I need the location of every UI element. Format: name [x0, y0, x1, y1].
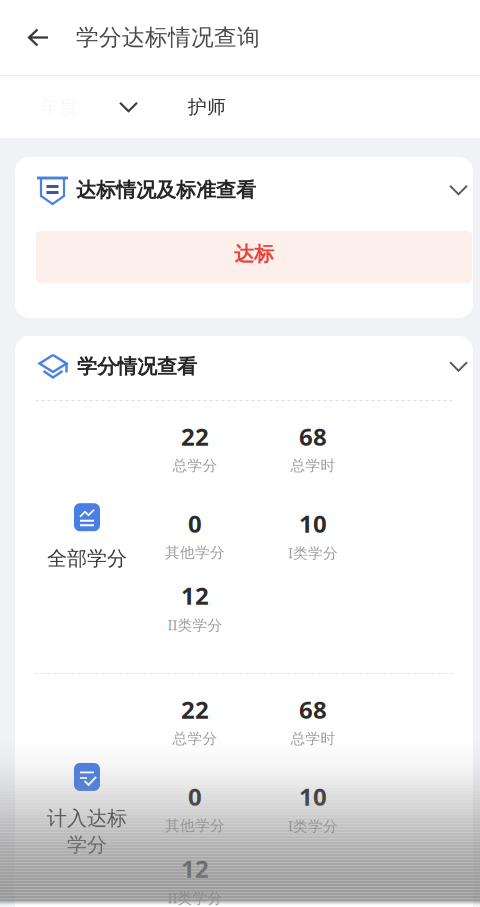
staticText: 10 — [299, 508, 327, 539]
staticText: 总学分 — [172, 456, 217, 474]
staticText: 总学时 — [290, 456, 335, 474]
staticText: 护师 — [188, 95, 226, 118]
staticText: 总学分 — [172, 729, 217, 747]
staticText: 达标情况及标准查看 — [76, 178, 256, 202]
staticText: 12 — [181, 853, 209, 884]
button[interactable]: 返回 — [0, 0, 76, 75]
staticText: 学分达标情况查询 — [76, 24, 260, 51]
button[interactable]: 学分情况查看 — [15, 336, 473, 400]
staticText: 计入达标 — [47, 806, 127, 830]
staticText: 0 — [188, 508, 202, 539]
staticText: 0 — [188, 781, 202, 812]
staticText: II类学分 — [167, 888, 222, 907]
staticText: 10 — [299, 781, 327, 812]
staticText: 68 — [299, 694, 327, 725]
staticText: I类学分 — [288, 816, 338, 835]
staticText: 学分情况查看 — [77, 354, 197, 379]
staticText: 12 — [181, 580, 209, 611]
staticText: 其他学分 — [165, 543, 225, 561]
staticText: II类学分 — [167, 615, 222, 634]
staticText: 22 — [181, 421, 209, 452]
staticText: 全部学分 — [47, 546, 127, 571]
staticText: 其他学分 — [165, 816, 225, 834]
staticText: 68 — [299, 421, 327, 452]
button[interactable]: 年度 — [0, 76, 480, 138]
staticText: 总学时 — [290, 729, 335, 747]
button[interactable]: 达标情况及标准查看 — [15, 157, 473, 318]
staticText: 22 — [181, 694, 209, 725]
staticText: I类学分 — [288, 543, 338, 562]
staticText: 达标 — [234, 242, 274, 266]
staticText: 学分 — [67, 832, 107, 857]
